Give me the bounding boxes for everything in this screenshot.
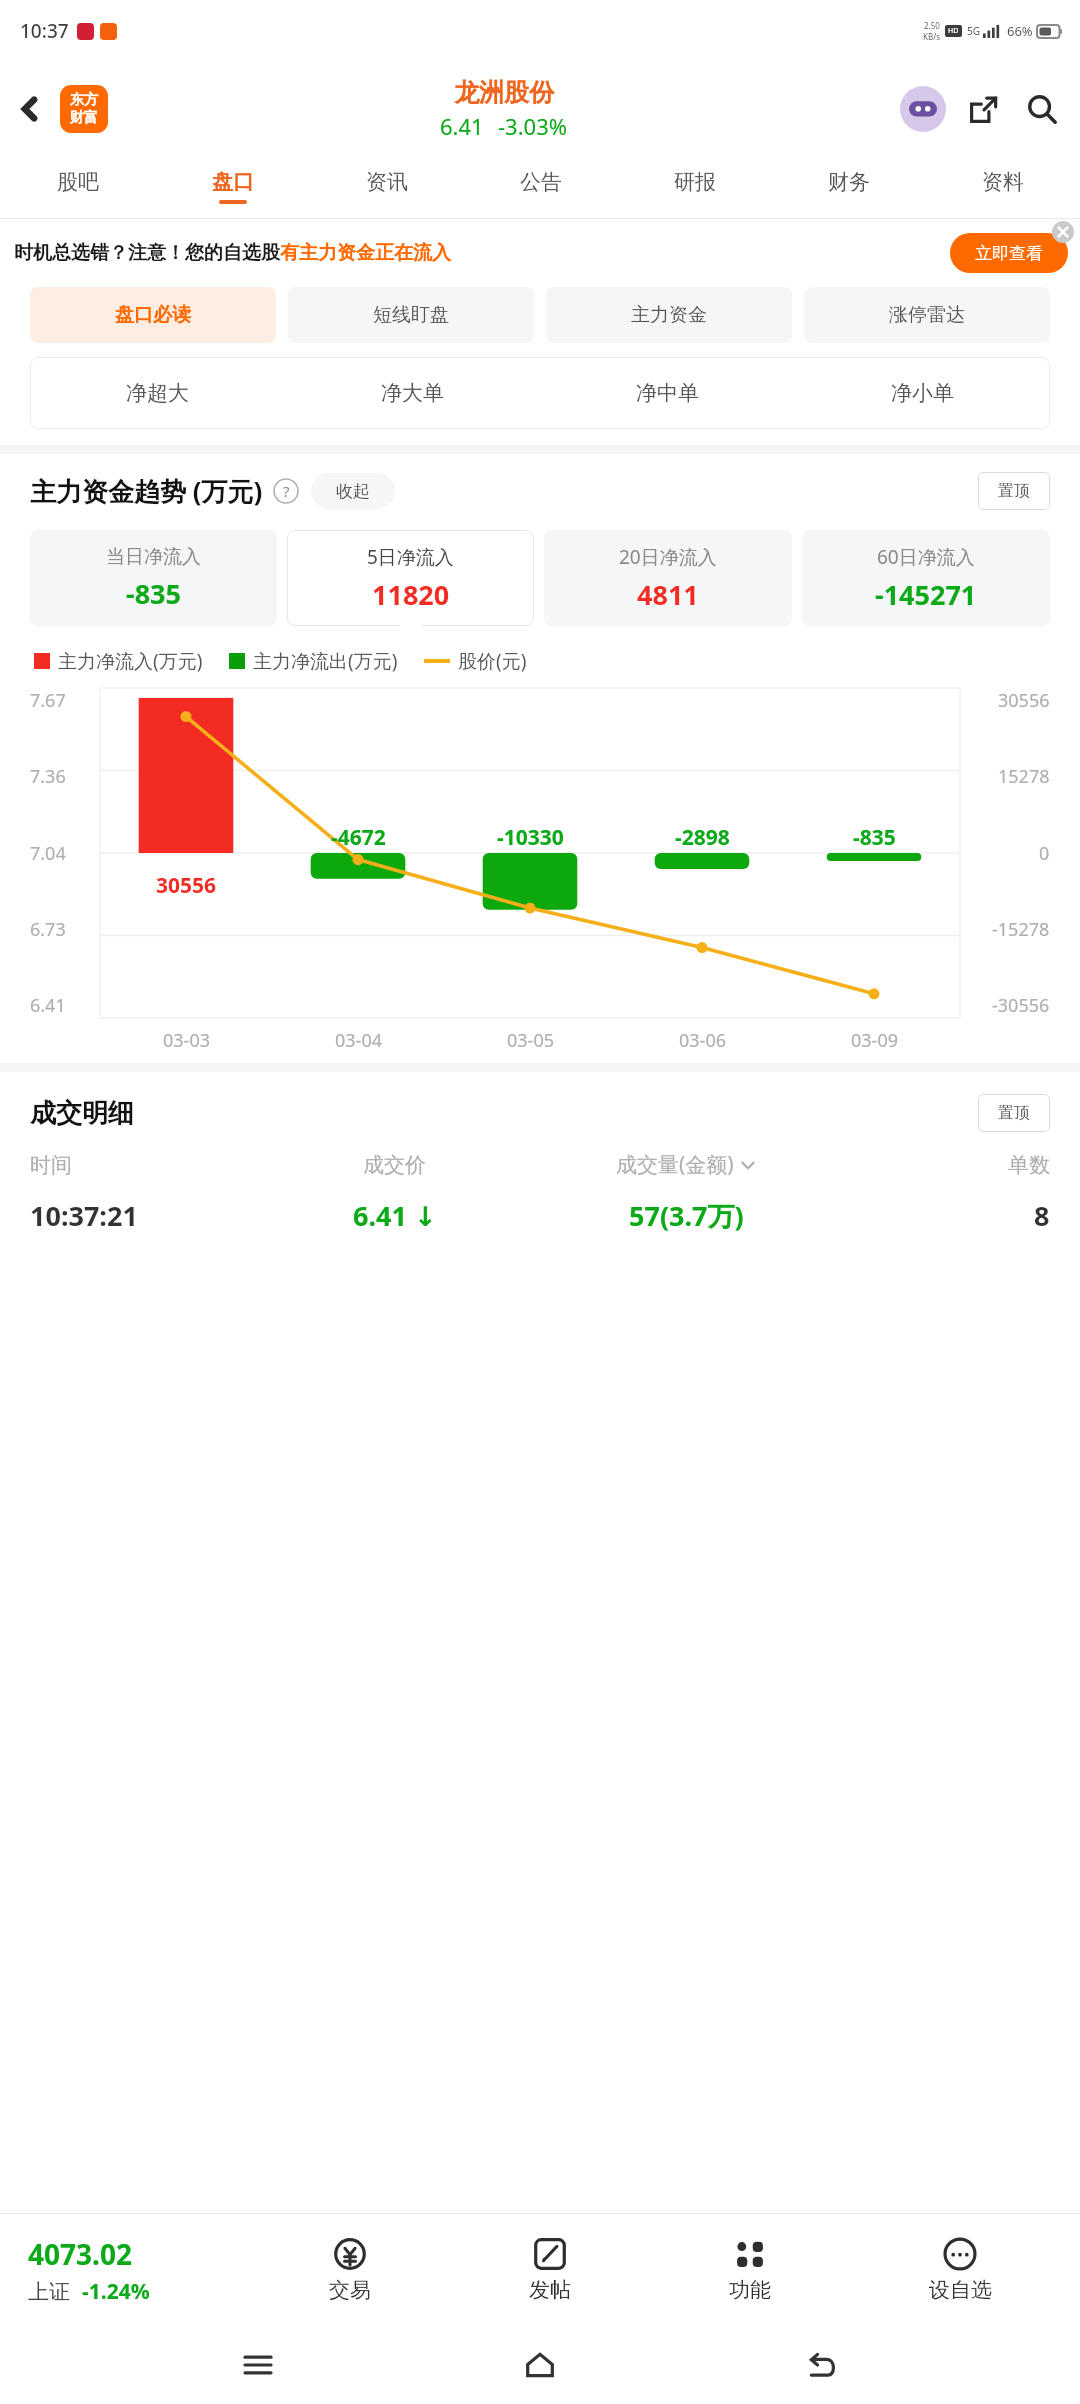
- staticText: -15278: [992, 917, 1050, 942]
- staticText: -4672: [331, 823, 386, 852]
- button[interactable]: 收起: [311, 473, 395, 509]
- staticText: 盘口: [212, 169, 254, 195]
- button[interactable]: 研报: [618, 155, 772, 218]
- staticText: 涨停雷达: [889, 303, 965, 327]
- staticText: 主力净流出(万元): [253, 648, 398, 674]
- staticText: 成交量(金额): [616, 1150, 734, 1179]
- staticText: 03-04: [335, 1028, 382, 1053]
- button[interactable]: Share: [960, 86, 1006, 132]
- staticText: 10:37: [20, 18, 69, 44]
- button[interactable]: 功能: [650, 2214, 850, 2326]
- staticText: 净大单: [381, 380, 444, 406]
- button[interactable]: Help: [273, 478, 299, 504]
- button[interactable]: 财务: [772, 155, 926, 218]
- staticText: -10330: [497, 823, 564, 852]
- button[interactable]: Home: [516, 2341, 564, 2389]
- button[interactable]: 盘口必读: [30, 287, 276, 343]
- staticText: 66%: [1007, 22, 1033, 40]
- staticText: 主力资金趋势 (万元): [30, 473, 263, 509]
- staticText: -3.03%: [498, 111, 568, 141]
- staticText: 有主力资金正在流入: [280, 241, 451, 265]
- staticText: 7.67: [30, 688, 66, 713]
- staticText: 单数: [1008, 1152, 1050, 1178]
- staticText: 发帖: [529, 2277, 571, 2303]
- button[interactable]: 盘口: [155, 155, 310, 218]
- staticText: 股吧: [57, 169, 99, 195]
- button[interactable]: 净小单: [795, 357, 1050, 429]
- staticText: 4811: [637, 576, 699, 613]
- button[interactable]: Back: [0, 62, 60, 155]
- button[interactable]: 公告: [464, 155, 618, 218]
- staticText: 60日净流入: [877, 544, 975, 570]
- staticText: 立即查看: [975, 243, 1043, 264]
- button[interactable]: 净超大: [30, 357, 285, 429]
- staticText: 6.41 ↓: [353, 1197, 437, 1234]
- button[interactable]: 交易: [250, 2214, 450, 2326]
- button[interactable]: 股吧: [0, 155, 155, 218]
- button[interactable]: 东方: [60, 85, 108, 133]
- staticText: 7.04: [30, 841, 66, 866]
- staticText: 时机总选错？注意！您的自选股: [14, 241, 280, 265]
- staticText: 2.50: [924, 20, 940, 31]
- staticText: 上证: [28, 2279, 70, 2305]
- button[interactable]: Recents: [234, 2341, 282, 2389]
- staticText: -835: [126, 575, 181, 612]
- staticText: -835: [853, 823, 896, 852]
- staticText: 东方: [70, 91, 98, 109]
- staticText: 20日净流入: [619, 544, 717, 570]
- staticText: 功能: [729, 2277, 771, 2303]
- button[interactable]: 设自选: [850, 2214, 1070, 2326]
- button[interactable]: 净大单: [285, 357, 540, 429]
- button[interactable]: 20日净流入: [544, 530, 792, 626]
- staticText: 设自选: [929, 2277, 992, 2303]
- button[interactable]: Back: [798, 2341, 846, 2389]
- button[interactable]: 主力资金: [546, 287, 792, 343]
- staticText: 成交价: [363, 1152, 426, 1178]
- staticText: -1.24%: [82, 2277, 150, 2306]
- staticText: 0: [1039, 841, 1050, 866]
- staticText: 主力净流入(万元): [58, 648, 203, 674]
- staticText: HD: [948, 26, 959, 36]
- staticText: 成交明细: [30, 1097, 134, 1130]
- staticText: -30556: [992, 993, 1050, 1018]
- staticText: 8: [1034, 1197, 1050, 1234]
- staticText: 时间: [30, 1152, 72, 1178]
- button[interactable]: 资料: [926, 155, 1080, 218]
- staticText: 财富: [70, 109, 98, 127]
- button[interactable]: 立即查看: [950, 233, 1068, 273]
- button[interactable]: 当日净流入: [30, 530, 277, 626]
- staticText: 11820: [372, 576, 450, 613]
- button[interactable]: 发帖: [450, 2214, 650, 2326]
- staticText: 03-05: [507, 1028, 554, 1053]
- staticText: KB/s: [923, 31, 940, 42]
- button[interactable]: 60日净流入: [802, 530, 1050, 626]
- staticText: -2898: [675, 823, 730, 852]
- staticText: ?: [283, 481, 290, 501]
- staticText: 03-03: [163, 1028, 210, 1053]
- staticText: 收起: [336, 481, 370, 502]
- button[interactable]: 置顶: [978, 472, 1050, 510]
- staticText: 15278: [998, 764, 1050, 789]
- staticText: 龙洲股份: [454, 77, 554, 108]
- button[interactable]: 净中单: [540, 357, 795, 429]
- staticText: 净小单: [891, 380, 954, 406]
- staticText: 净中单: [636, 380, 699, 406]
- button[interactable]: 涨停雷达: [804, 287, 1050, 343]
- staticText: 5G: [967, 24, 980, 38]
- button[interactable]: 5日净流入: [287, 530, 534, 626]
- staticText: -145271: [875, 576, 977, 613]
- staticText: 盘口必读: [115, 303, 191, 327]
- button[interactable]: 4073.02: [0, 2214, 250, 2326]
- button[interactable]: 置顶: [978, 1094, 1050, 1132]
- staticText: 财务: [828, 169, 870, 195]
- staticText: 交易: [329, 2277, 371, 2303]
- staticText: 主力资金: [631, 303, 707, 327]
- button[interactable]: User avatar: [900, 86, 946, 132]
- staticText: 10:37:21: [30, 1197, 138, 1234]
- button[interactable]: 短线盯盘: [288, 287, 534, 343]
- staticText: 研报: [674, 169, 716, 195]
- button[interactable]: Search: [1016, 83, 1068, 135]
- button[interactable]: Close: [1050, 219, 1076, 245]
- staticText: 公告: [520, 169, 562, 195]
- button[interactable]: 资讯: [310, 155, 464, 218]
